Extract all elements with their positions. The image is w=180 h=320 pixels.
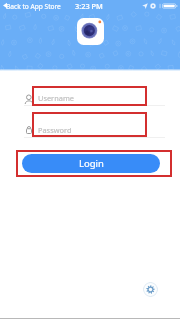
button[interactable]: [32, 112, 147, 137]
staticText: 3:23 PM: [75, 1, 103, 11]
button[interactable]: Settings: [143, 282, 158, 297]
button[interactable]: [16, 150, 172, 177]
button[interactable]: Login: [22, 154, 160, 173]
staticText: Username: [38, 93, 74, 103]
staticText: Login: [79, 157, 104, 170]
button[interactable]: [32, 86, 147, 106]
staticText: Password: [38, 125, 72, 135]
staticText: Back to App Store: [6, 2, 61, 11]
